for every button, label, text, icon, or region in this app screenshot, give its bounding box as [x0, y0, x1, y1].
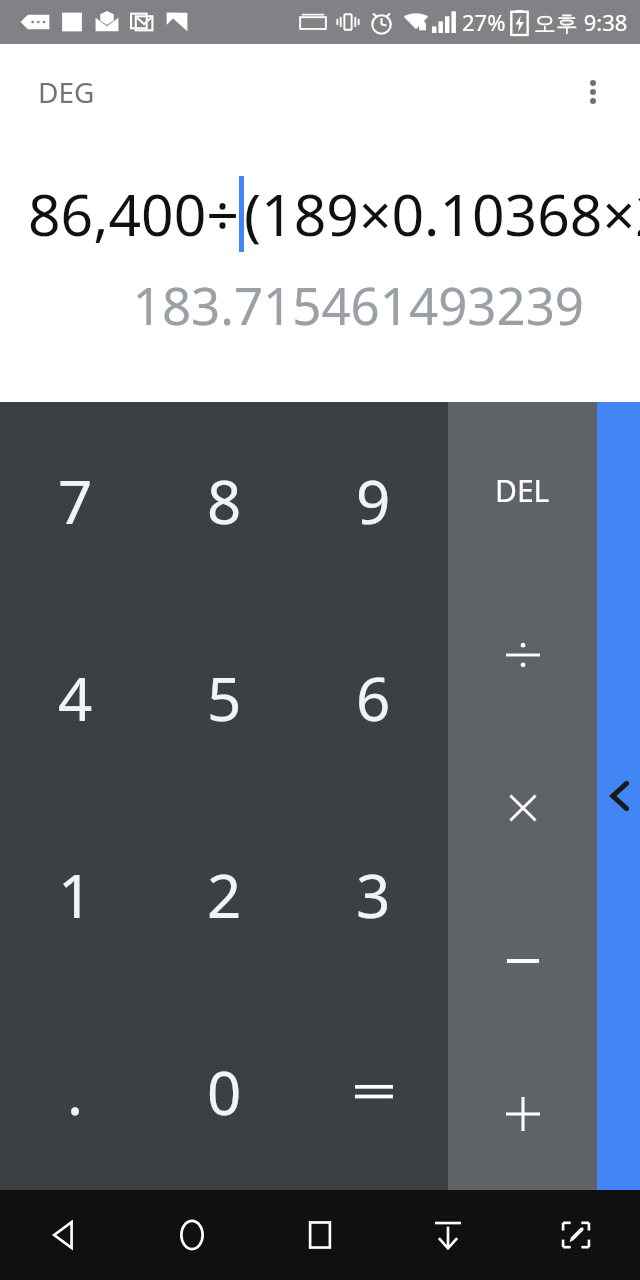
button[interactable]: More options	[564, 63, 622, 121]
button[interactable]: DEG	[24, 63, 109, 121]
button[interactable]	[448, 884, 597, 1037]
staticText: 7	[58, 460, 93, 542]
staticText: 오후 9:38	[534, 7, 628, 37]
staticText: (189×0.10368×2	[244, 175, 640, 253]
button[interactable]: Home	[128, 1190, 256, 1280]
button[interactable]: Capture and edit	[512, 1190, 640, 1280]
button[interactable]: 2	[150, 796, 299, 993]
staticText: 9	[356, 460, 391, 542]
button[interactable]: 4	[0, 599, 150, 796]
button[interactable]: 3	[299, 796, 448, 993]
staticText: 4	[58, 657, 93, 739]
button[interactable]	[448, 731, 597, 884]
staticText: 8	[207, 460, 242, 542]
staticText: 2	[207, 854, 242, 936]
button[interactable]: 1	[0, 796, 150, 993]
button[interactable]: .	[0, 993, 150, 1190]
button[interactable]: 6	[299, 599, 448, 796]
staticText: 1	[58, 854, 93, 936]
button[interactable]: Hide keyboard	[384, 1190, 512, 1280]
staticText: 27%	[462, 7, 506, 37]
button[interactable]: Show advanced keypad	[597, 402, 640, 1190]
staticText: .	[67, 1051, 84, 1133]
button[interactable]: 5	[150, 599, 299, 796]
staticText: 183.715461493239	[0, 270, 584, 339]
button[interactable]: DEL	[448, 402, 597, 578]
staticText: DEG	[38, 73, 95, 111]
staticText: 3	[356, 854, 391, 936]
staticText: 0	[207, 1051, 242, 1133]
staticText: 5	[207, 657, 242, 739]
button[interactable]: Back	[0, 1190, 128, 1280]
staticText: DEL	[495, 470, 550, 511]
button[interactable]	[448, 1037, 597, 1190]
button[interactable]: 9	[299, 402, 448, 599]
button[interactable]: 7	[0, 402, 150, 599]
staticText: 6	[356, 657, 391, 739]
button[interactable]: 8	[150, 402, 299, 599]
button[interactable]	[448, 578, 597, 731]
staticText: 86,400÷	[28, 175, 239, 253]
button[interactable]: 0	[150, 993, 299, 1190]
button[interactable]: 86,400÷	[0, 166, 640, 262]
button[interactable]	[299, 993, 448, 1190]
button[interactable]: Recent apps	[256, 1190, 384, 1280]
